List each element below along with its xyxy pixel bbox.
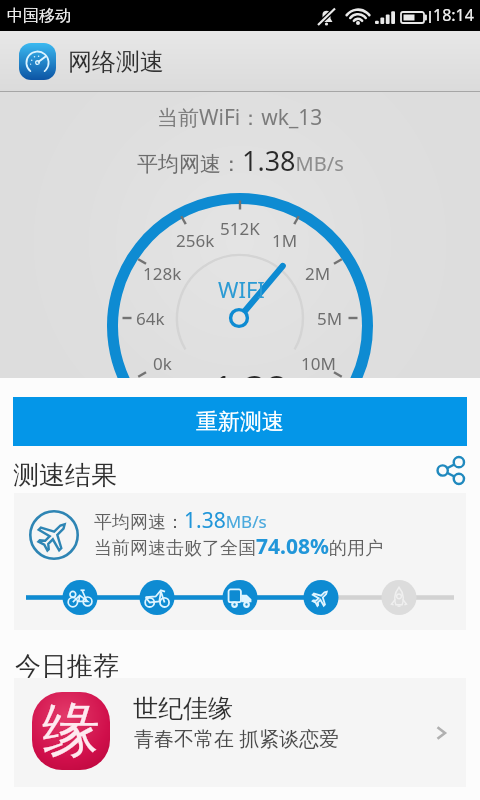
staticText: 世纪佳缘 bbox=[133, 693, 233, 724]
staticText: 平均网速：1.38MB/s bbox=[94, 506, 267, 535]
staticText: 青春不常在 抓紧谈恋爱 bbox=[134, 725, 340, 752]
button[interactable]: 网络测速 bbox=[0, 31, 480, 92]
staticText: 缘 bbox=[42, 694, 100, 767]
staticText: 5M bbox=[317, 307, 343, 330]
staticText: 18:14 bbox=[433, 4, 474, 26]
staticText: 当前WiFi：wk_13 bbox=[157, 103, 323, 132]
staticText: 重新测速 bbox=[196, 408, 284, 436]
staticText: 平均网速：1.38MB/s bbox=[137, 142, 344, 179]
staticText: 512K bbox=[220, 217, 260, 240]
button[interactable]: 分享 bbox=[430, 450, 470, 490]
staticText: 10M bbox=[301, 352, 336, 375]
staticText: 1M bbox=[272, 229, 298, 252]
staticText: 当前网速击败了全国74.08%的用户 bbox=[94, 532, 383, 561]
staticText: WIFI bbox=[218, 274, 265, 304]
staticText: 测速结果 bbox=[13, 459, 117, 492]
staticText: 0k bbox=[153, 352, 172, 375]
staticText: 128k bbox=[143, 262, 182, 285]
staticText: 网络测速 bbox=[68, 47, 164, 77]
staticText: 1.38 bbox=[212, 362, 288, 378]
staticText: 256k bbox=[176, 229, 215, 252]
button[interactable]: 缘 bbox=[14, 678, 466, 787]
button[interactable]: 重新测速 bbox=[13, 397, 467, 446]
staticText: 今日推荐 bbox=[15, 650, 119, 683]
staticText: 64k bbox=[136, 307, 165, 330]
staticText: 中国移动 bbox=[7, 6, 71, 26]
staticText: 2M bbox=[305, 262, 331, 285]
